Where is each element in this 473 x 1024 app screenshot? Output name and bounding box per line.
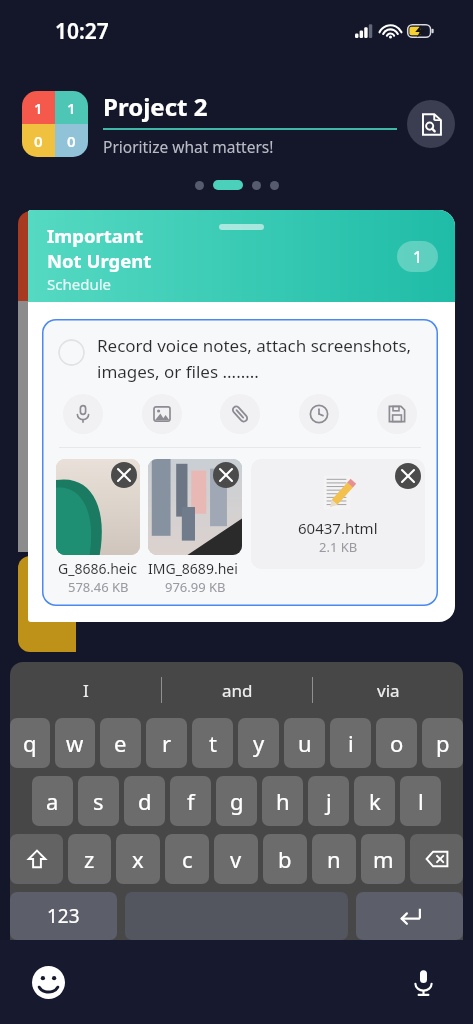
staticText: y <box>253 728 265 758</box>
button[interactable]: Search documents <box>407 100 455 148</box>
staticText: z <box>84 844 95 874</box>
button[interactable]: Backspace <box>410 834 463 884</box>
button[interactable]: w <box>55 718 95 768</box>
staticText: c <box>182 844 193 874</box>
staticText: Not Urgent <box>47 248 152 273</box>
button[interactable]: Mark task complete <box>58 339 85 366</box>
button[interactable]: Add image <box>142 394 182 434</box>
button[interactable]: Emoji keyboard <box>30 964 66 1000</box>
button[interactable]: j <box>308 776 349 826</box>
staticText: 123 <box>47 903 80 929</box>
staticText: w <box>66 728 84 758</box>
staticText: Record voice notes, attach screenshots, … <box>97 334 426 383</box>
staticText: 0 <box>67 131 76 151</box>
button[interactable]: x <box>116 834 160 884</box>
button[interactable]: Record voice note <box>63 394 103 434</box>
staticText: u <box>298 728 312 758</box>
button[interactable]: n <box>312 834 356 884</box>
button[interactable]: Attach file <box>220 394 260 434</box>
button[interactable]: b <box>263 834 307 884</box>
staticText: h <box>276 786 290 816</box>
button[interactable]: I <box>10 662 161 718</box>
button[interactable]: e <box>100 718 141 768</box>
button[interactable]: g <box>216 776 257 826</box>
button[interactable] <box>195 181 204 190</box>
staticText: 1 <box>34 98 43 118</box>
button[interactable]: Shift <box>10 834 63 884</box>
staticText: a <box>46 786 59 816</box>
button[interactable]: via <box>313 662 463 718</box>
button[interactable]: Remove attachment <box>213 462 239 488</box>
button[interactable]: 1 <box>22 91 88 157</box>
button[interactable]: Remove attachment <box>111 462 137 488</box>
staticText: l <box>418 786 424 816</box>
staticText: 10:27 <box>55 17 109 46</box>
button[interactable]: d <box>124 776 165 826</box>
button[interactable]: p <box>422 718 463 768</box>
button[interactable]: o <box>376 718 417 768</box>
button[interactable]: v <box>214 834 258 884</box>
button[interactable]: h <box>262 776 303 826</box>
staticText: n <box>327 844 341 874</box>
staticText: x <box>132 844 144 874</box>
button[interactable] <box>148 459 242 555</box>
staticText: v <box>230 844 242 874</box>
button[interactable]: a <box>32 776 73 826</box>
button[interactable] <box>213 180 243 190</box>
button[interactable]: y <box>238 718 279 768</box>
staticText: Important <box>47 223 143 248</box>
staticText: o <box>390 728 404 758</box>
staticText: t <box>209 728 217 758</box>
staticText: s <box>93 786 104 816</box>
button[interactable]: z <box>68 834 111 884</box>
staticText: 1 <box>67 98 76 118</box>
staticText: b <box>278 844 292 874</box>
staticText: 60437.html <box>298 518 378 538</box>
staticText: 1 <box>413 246 423 268</box>
button[interactable]: q <box>10 718 50 768</box>
staticText: via <box>377 679 400 702</box>
button[interactable]: Save <box>377 394 417 434</box>
staticText: I <box>83 679 89 702</box>
staticText: q <box>23 728 37 758</box>
button[interactable]: Voice input <box>405 964 441 1000</box>
button[interactable]: m <box>361 834 405 884</box>
button[interactable] <box>252 181 261 190</box>
staticText: j <box>326 786 332 816</box>
staticText: f <box>187 786 195 816</box>
button[interactable]: 123 <box>10 892 117 940</box>
button[interactable]: 60437.html <box>251 459 425 569</box>
button[interactable]: Important <box>28 210 455 302</box>
button[interactable] <box>270 181 279 190</box>
button[interactable]: f <box>170 776 211 826</box>
button[interactable]: Set reminder <box>299 394 339 434</box>
button[interactable]: t <box>192 718 233 768</box>
staticText: g <box>230 786 244 816</box>
button[interactable]: s <box>78 776 119 826</box>
button[interactable] <box>56 459 140 555</box>
staticText: r <box>162 728 172 758</box>
button[interactable]: k <box>354 776 395 826</box>
button[interactable]: l <box>400 776 441 826</box>
button[interactable]: and <box>162 662 312 718</box>
staticText: IMG_8689.heic <box>148 559 242 578</box>
button[interactable]: c <box>165 834 209 884</box>
staticText: and <box>222 679 253 702</box>
staticText: d <box>138 786 152 816</box>
staticText: 2.1 KB <box>319 538 358 556</box>
button[interactable]: Return <box>356 892 463 940</box>
staticText: e <box>114 728 127 758</box>
staticText: m <box>373 844 394 874</box>
staticText: p <box>436 728 450 758</box>
button[interactable]: Remove attachment <box>395 463 421 489</box>
button[interactable]: i <box>330 718 371 768</box>
button[interactable]: Project 2 <box>103 90 397 157</box>
staticText: 578.46 KB <box>68 578 129 596</box>
button[interactable]: r <box>146 718 187 768</box>
button[interactable]: u <box>284 718 325 768</box>
button[interactable]: 1 <box>397 241 438 272</box>
staticText: Schedule <box>47 274 111 294</box>
staticText: Project 2 <box>103 90 208 123</box>
staticText: 976.99 KB <box>165 578 226 596</box>
